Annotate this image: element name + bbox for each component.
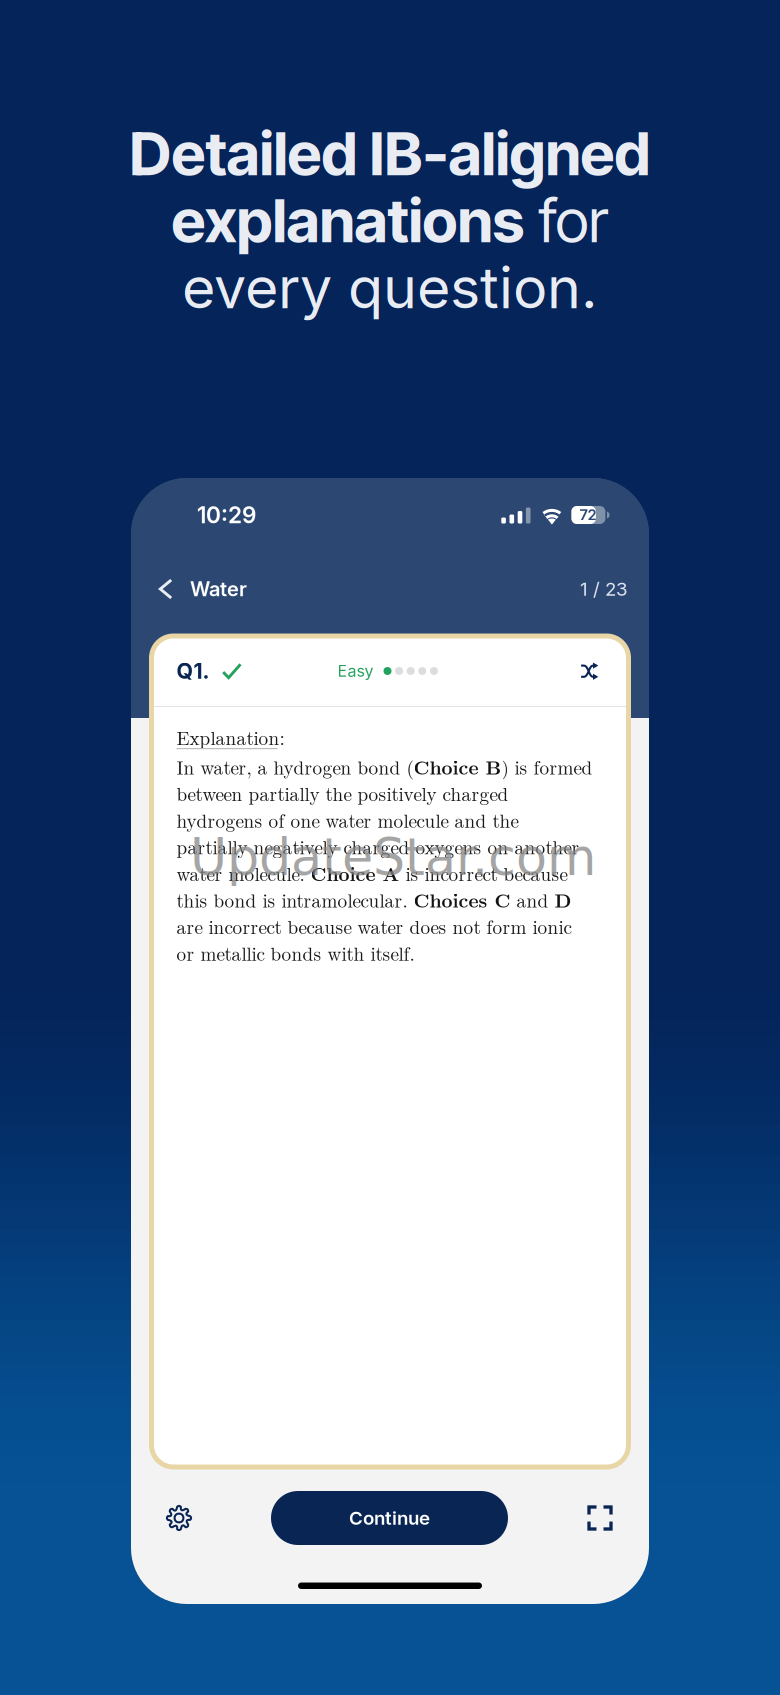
staticText: Water	[190, 577, 247, 601]
staticText: every question.	[182, 253, 598, 322]
staticText: In water, a hydrogen bond (Choice B) is …	[176, 753, 592, 780]
button[interactable]: Water	[158, 568, 247, 610]
staticText: 10:29	[197, 501, 256, 529]
staticText: Detailed IB-aligned	[129, 117, 650, 190]
staticText: partially negatively charged oxygens on …	[176, 833, 579, 859]
staticText: UpdateStar.com	[190, 828, 596, 887]
staticText: hydrogens of one water molecule and the	[176, 806, 518, 833]
staticText: are incorrect because water does not for…	[176, 913, 571, 939]
button[interactable]: Settings	[152, 1491, 206, 1545]
staticText: Easy	[337, 661, 373, 681]
staticText: water molecule. Choice A is incorrect be…	[176, 860, 567, 886]
staticText: Q1.	[176, 658, 209, 684]
button[interactable]: Shuffle questions	[580, 662, 598, 679]
button[interactable]: Continue	[271, 1491, 508, 1545]
staticText: or metallic bonds with itself.	[176, 939, 414, 966]
staticText: 72	[579, 506, 596, 524]
staticText: Explanation:	[176, 723, 284, 750]
staticText: explanations for	[171, 185, 608, 256]
button[interactable]: Fullscreen	[573, 1491, 627, 1545]
staticText: between partially the positively charged	[176, 780, 508, 806]
staticText: this bond is intramolecular. Choices C a…	[176, 886, 571, 913]
staticText: Continue	[349, 1507, 430, 1529]
staticText: 1 / 23	[580, 578, 628, 600]
